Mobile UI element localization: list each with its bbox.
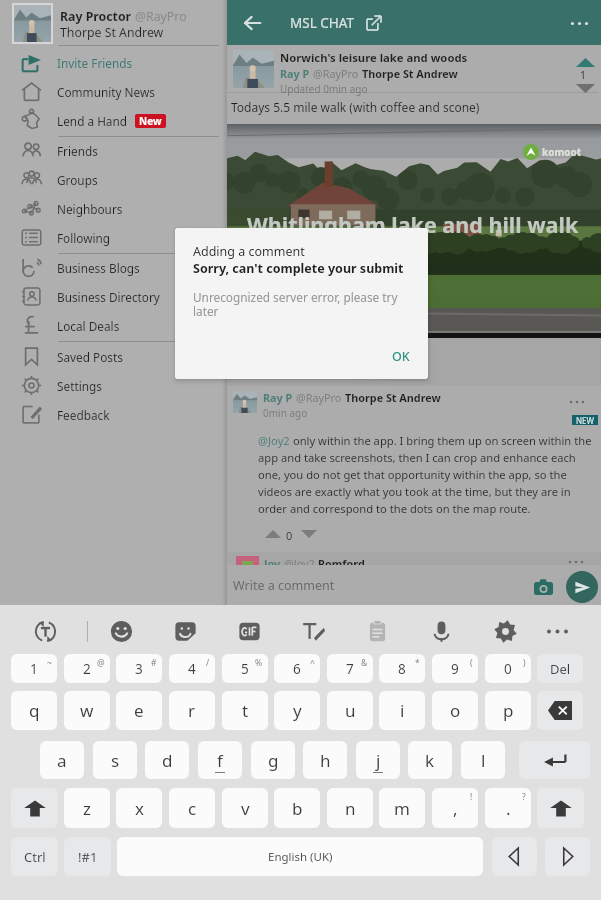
button[interactable]: Saved Posts	[0, 342, 227, 371]
staticText: )	[523, 657, 526, 669]
button[interactable]: Back	[229, 1, 275, 45]
button[interactable]: t	[222, 691, 268, 730]
button[interactable]: Open in new window	[360, 9, 388, 37]
staticText: 1	[30, 660, 38, 678]
button[interactable]: l	[461, 741, 505, 779]
button[interactable]: Settings	[0, 371, 227, 400]
button[interactable]: r	[169, 691, 215, 730]
button[interactable]: Del	[537, 654, 583, 683]
button[interactable]: u	[327, 691, 373, 730]
button[interactable]: 0	[485, 654, 531, 683]
button[interactable]: 3	[116, 654, 162, 683]
button[interactable]: k	[408, 741, 452, 779]
button[interactable]: Post options	[566, 391, 588, 413]
button[interactable]: Community News	[0, 77, 227, 106]
button[interactable]: i	[379, 691, 425, 730]
button[interactable]: Groups	[0, 165, 227, 194]
staticText: NEW	[576, 415, 594, 425]
button[interactable]: !#1	[64, 837, 111, 876]
staticText: Feedback	[57, 407, 110, 423]
button[interactable]: g	[251, 741, 295, 779]
button[interactable]: Keyboard tool	[101, 611, 141, 651]
button[interactable]: Friends	[0, 136, 227, 165]
staticText: z	[83, 797, 91, 820]
staticText: Following	[57, 230, 111, 246]
button[interactable]: Keyboard tool	[537, 611, 577, 651]
button[interactable]: Move left	[492, 837, 537, 876]
button[interactable]: Keyboard tool	[293, 611, 333, 651]
staticText: (	[470, 657, 473, 669]
staticText: Updated 0min ago	[280, 82, 368, 96]
button[interactable]: Key	[11, 788, 58, 828]
button[interactable]: Add photo	[528, 574, 558, 600]
button[interactable]: OK	[380, 340, 422, 373]
staticText: 6	[293, 660, 301, 678]
button[interactable]: Key	[537, 788, 584, 828]
staticText: later	[193, 303, 219, 319]
button[interactable]: Downvote	[570, 80, 600, 96]
button[interactable]: English (UK)	[117, 837, 483, 876]
button[interactable]: More options	[557, 1, 601, 45]
staticText: one, you do not get that opportunity wit…	[258, 467, 567, 482]
button[interactable]: j	[356, 741, 400, 779]
button[interactable]: 6	[274, 654, 320, 683]
button[interactable]: e	[116, 691, 162, 730]
staticText: %	[255, 657, 263, 669]
button[interactable]: Invite Friends	[0, 48, 227, 77]
button[interactable]: Move right	[545, 837, 590, 876]
button[interactable]: x	[116, 788, 162, 828]
button[interactable]: n	[327, 788, 373, 828]
button[interactable]: Business Blogs	[0, 253, 227, 282]
button[interactable]: f	[198, 741, 242, 779]
button[interactable]: a	[40, 741, 84, 779]
staticText: t	[242, 699, 249, 722]
button[interactable]: y	[274, 691, 320, 730]
button[interactable]: Local Deals	[0, 311, 227, 340]
button[interactable]: w	[64, 691, 110, 730]
button[interactable]: v	[222, 788, 268, 828]
button[interactable]: 9	[432, 654, 478, 683]
button[interactable]: q	[11, 691, 57, 730]
button[interactable]: Write a comment	[0, 565, 601, 605]
button[interactable]: Following	[0, 223, 227, 252]
button[interactable]: Keyboard tool	[485, 611, 525, 651]
button[interactable]: o	[432, 691, 478, 730]
button[interactable]: 2	[64, 654, 110, 683]
button[interactable]: Keyboard tool	[421, 611, 461, 651]
button[interactable]: Keyboard tool	[229, 611, 269, 651]
button[interactable]: b	[274, 788, 320, 828]
staticText: only within the app. I bring them up on …	[290, 433, 592, 448]
button[interactable]: Keyboard tool	[357, 611, 397, 651]
button[interactable]: .	[485, 788, 531, 828]
button[interactable]: Ctrl	[11, 837, 58, 876]
staticText: l	[481, 749, 486, 772]
button[interactable]: d	[145, 741, 189, 779]
button[interactable]: z	[64, 788, 110, 828]
button[interactable]: Keyboard tool	[165, 611, 205, 651]
button[interactable]: Lend a Hand	[0, 106, 227, 135]
button[interactable]: Neighbours	[0, 194, 227, 223]
button[interactable]: Feedback	[0, 400, 227, 429]
staticText: u	[345, 699, 356, 722]
button[interactable]: ,	[432, 788, 478, 828]
button[interactable]: Enter	[519, 741, 590, 779]
staticText: Thorpe St Andrew	[345, 390, 441, 405]
staticText: MSL CHAT	[290, 14, 354, 32]
staticText: f	[217, 749, 223, 772]
button[interactable]: 1	[11, 654, 57, 683]
button[interactable]: 7	[327, 654, 373, 683]
button[interactable]: 5	[222, 654, 268, 683]
button[interactable]: s	[93, 741, 137, 779]
button[interactable]: p	[485, 691, 531, 730]
button[interactable]: m	[379, 788, 425, 828]
button[interactable]: 4	[169, 654, 215, 683]
button[interactable]: Business Directory	[0, 282, 227, 311]
button[interactable]: h	[303, 741, 347, 779]
button[interactable]: 8	[379, 654, 425, 683]
staticText: r	[188, 699, 196, 722]
button[interactable]: Send	[566, 571, 598, 603]
button[interactable]: Key	[537, 691, 583, 730]
button[interactable]: Upvote	[570, 54, 600, 70]
button[interactable]: c	[169, 788, 215, 828]
button[interactable]: Keyboard tool	[25, 611, 65, 651]
